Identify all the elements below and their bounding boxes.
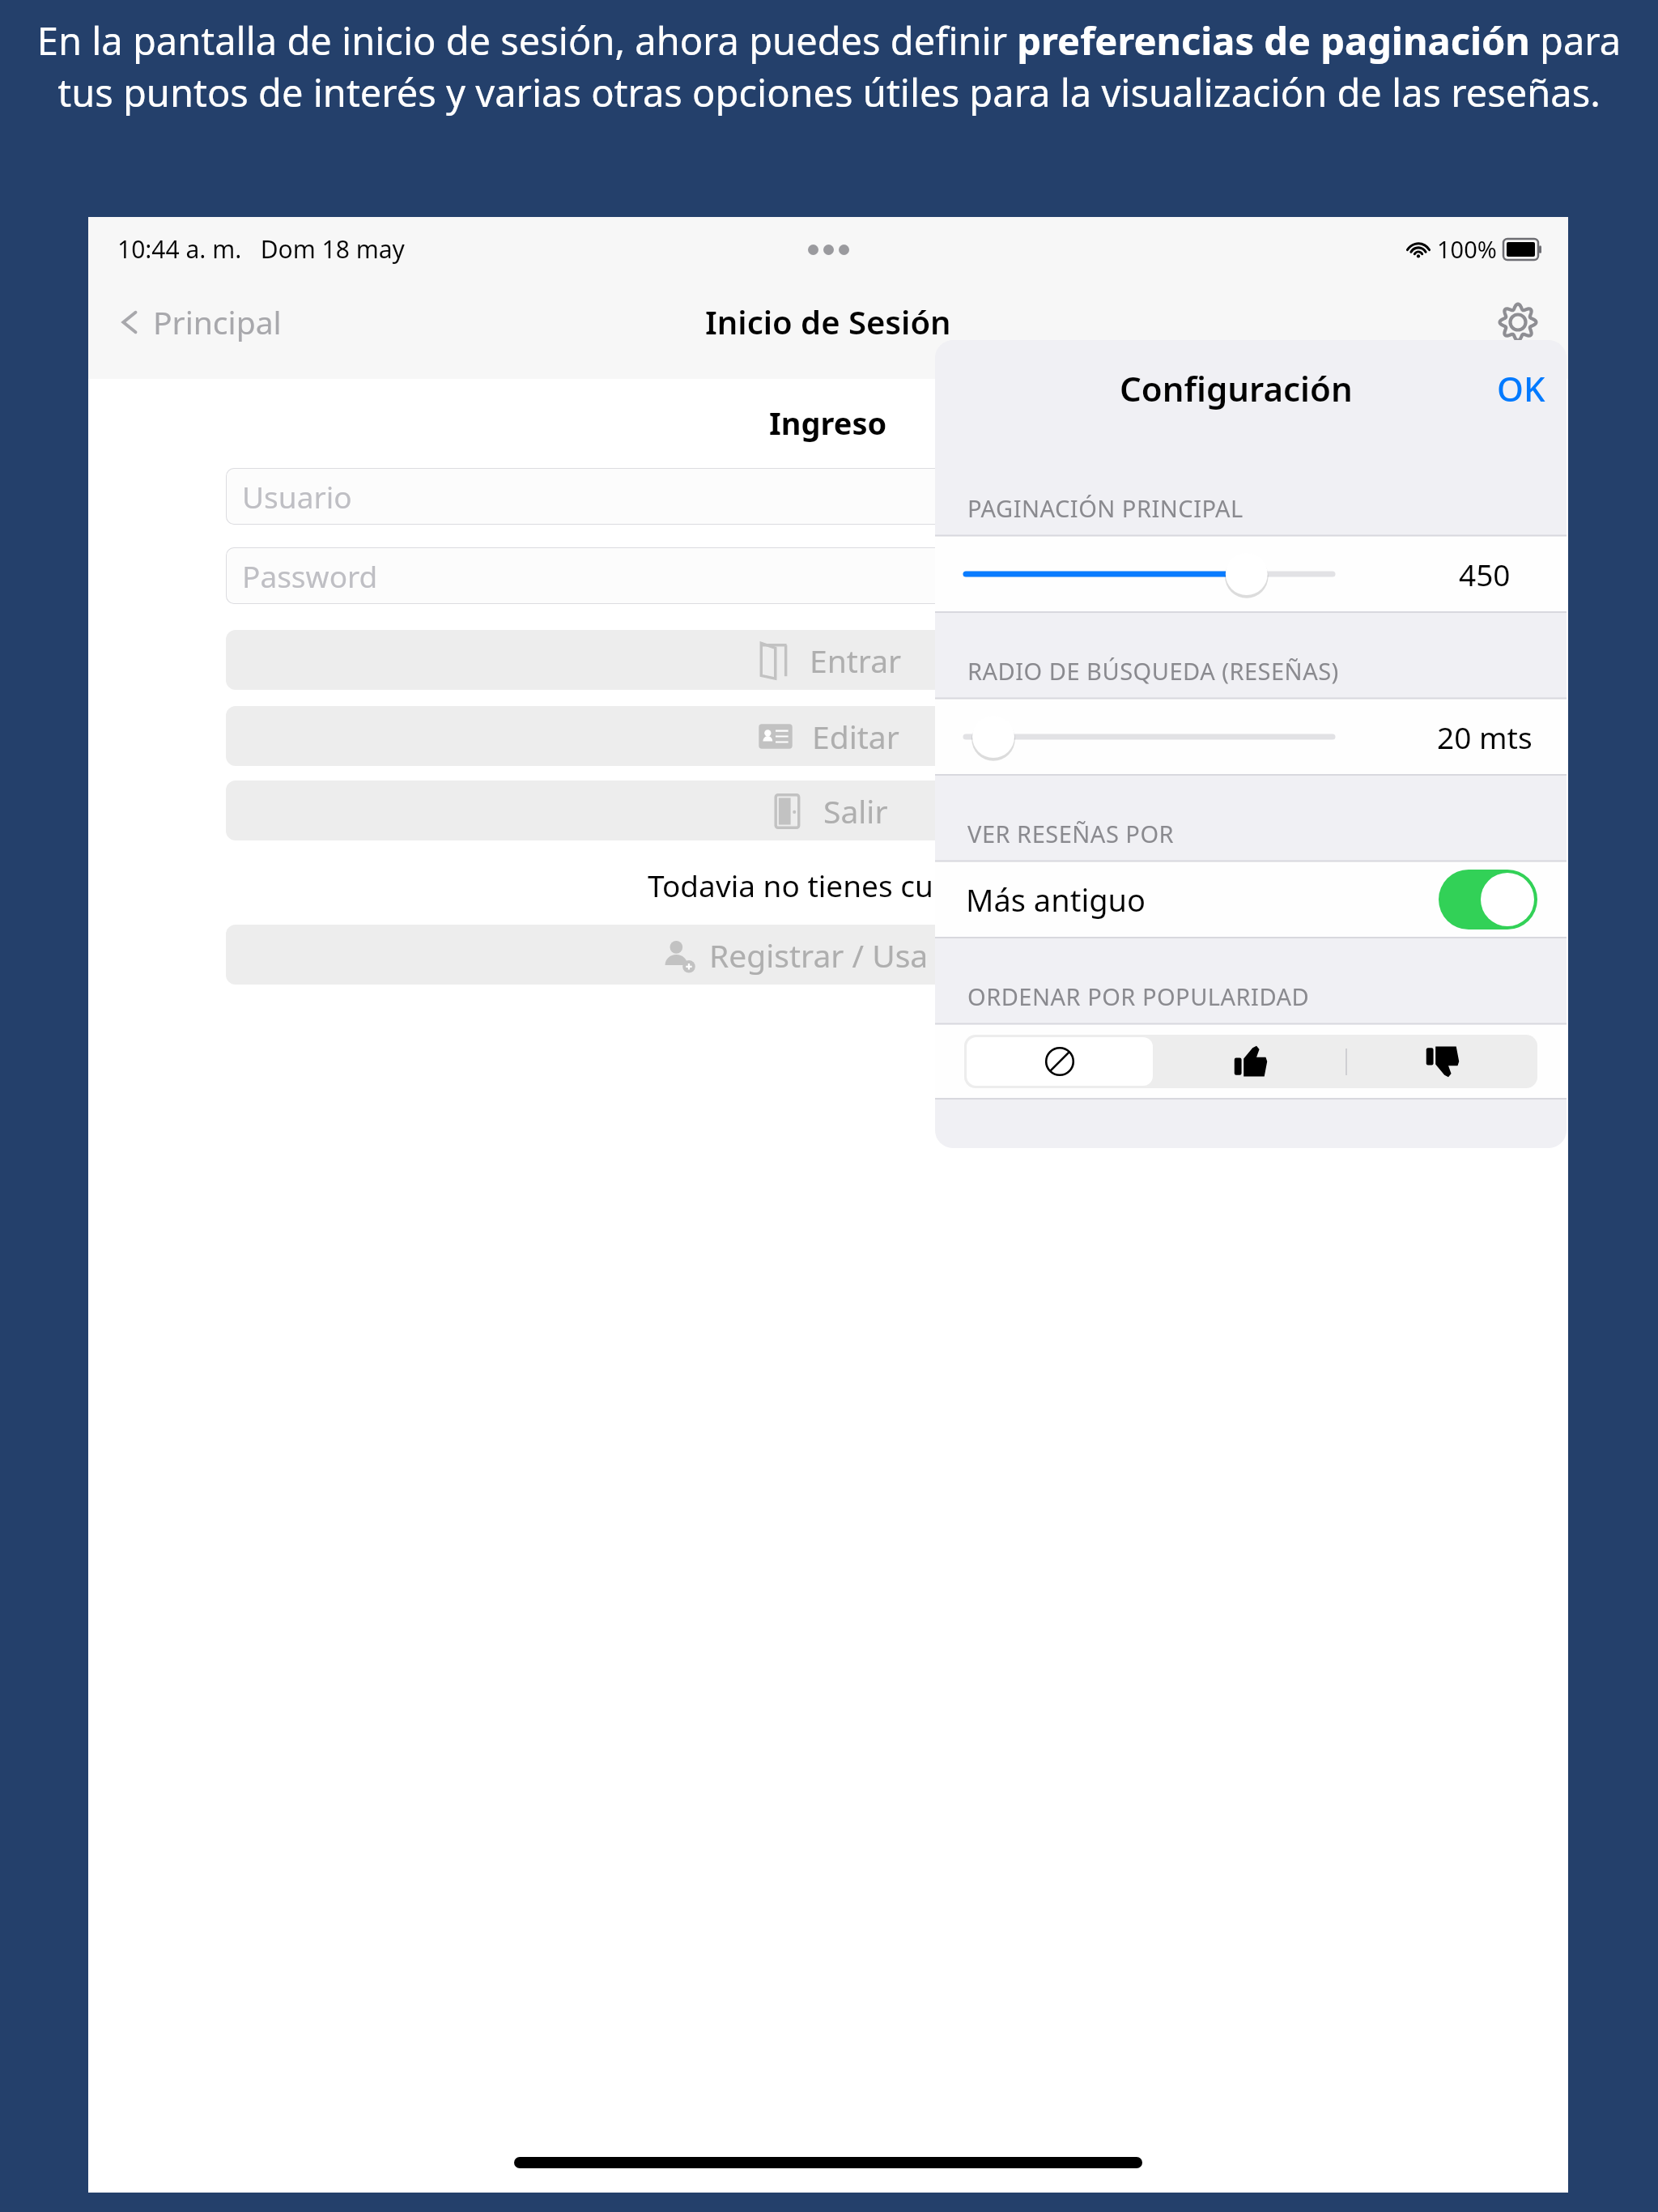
button[interactable]: Más antiguo bbox=[935, 861, 1567, 938]
staticText: 100% bbox=[1437, 233, 1497, 265]
button[interactable]: Configuración bbox=[1487, 291, 1549, 353]
staticText: ORDENAR POR POPULARIDAD bbox=[967, 981, 1310, 1012]
button[interactable]: Editar bbox=[226, 706, 1431, 766]
button[interactable]: Usuario bbox=[226, 468, 1431, 525]
staticText: OK bbox=[1497, 365, 1545, 411]
button[interactable]: OK bbox=[1486, 357, 1557, 419]
staticText: Todavia no tienes cuenta? bbox=[648, 865, 1010, 905]
button[interactable]: No me gusta bbox=[1347, 1035, 1537, 1088]
staticText: Entrar bbox=[810, 639, 902, 682]
button[interactable]: Principal bbox=[109, 296, 288, 348]
staticText: Password bbox=[242, 555, 378, 596]
button[interactable]: Entrar bbox=[226, 630, 1431, 690]
staticText: PAGINACIÓN PRINCIPAL bbox=[967, 492, 1243, 524]
staticText: 20 mts bbox=[1437, 717, 1533, 757]
staticText: Usuario bbox=[242, 476, 352, 517]
staticText: Salir bbox=[823, 789, 888, 832]
staticText: Registrar / Usa App bbox=[709, 934, 996, 976]
staticText: Configuración bbox=[1120, 365, 1353, 411]
staticText: Principal bbox=[153, 300, 282, 343]
staticText: VER RESEÑAS POR bbox=[967, 818, 1175, 849]
button[interactable]: Password bbox=[226, 547, 1431, 604]
button[interactable]: Más antiguo toggle bbox=[1439, 870, 1537, 929]
staticText: Ingreso bbox=[769, 402, 887, 444]
staticText: Editar bbox=[812, 715, 899, 758]
staticText: 10:44 a. m. Dom 18 may bbox=[117, 232, 405, 266]
staticText: 450 bbox=[1459, 554, 1511, 594]
button[interactable]: 20 mts bbox=[935, 698, 1567, 776]
button[interactable]: Salir bbox=[226, 781, 1431, 840]
staticText: RADIO DE BÚSQUEDA (RESEÑAS) bbox=[967, 655, 1339, 687]
staticText: Más antiguo bbox=[966, 878, 1146, 921]
staticText: En la pantalla de inicio de sesión, ahor… bbox=[32, 15, 1626, 118]
button[interactable]: Registrar / Usa App bbox=[226, 925, 1431, 985]
staticText: Inicio de Sesión bbox=[705, 300, 951, 343]
button[interactable]: Me gusta bbox=[1155, 1035, 1346, 1088]
button[interactable]: Sin orden bbox=[967, 1037, 1153, 1086]
button[interactable]: 450 bbox=[935, 535, 1567, 613]
